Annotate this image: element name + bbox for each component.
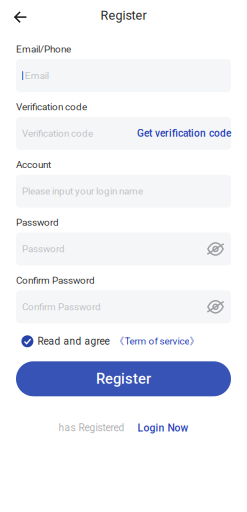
button[interactable]: Get verification code — [137, 127, 231, 139]
button[interactable]: Show password — [207, 242, 224, 255]
staticText: Password — [16, 217, 59, 228]
staticText: Confirm Password — [16, 274, 95, 286]
staticText: Verification code — [22, 128, 93, 139]
staticText: Register — [100, 8, 146, 23]
staticText: Please input your login name — [22, 185, 143, 197]
staticText: Password — [22, 243, 65, 255]
staticText: Email/Phone — [16, 43, 71, 55]
button[interactable]: Login Now — [137, 422, 188, 434]
button[interactable]: Read and agree — [16, 334, 231, 348]
staticText: Login Now — [137, 422, 188, 434]
staticText: Verification code — [16, 101, 87, 113]
button[interactable]: Back — [0, 0, 38, 31]
staticText: Confirm Password — [22, 301, 101, 313]
staticText: Account — [16, 159, 51, 170]
staticText: Read and agree — [37, 335, 109, 347]
staticText: has Registered — [58, 422, 124, 434]
staticText: Email — [25, 70, 49, 81]
staticText: 《Term of service》 — [114, 335, 199, 347]
staticText: Register — [96, 370, 151, 387]
button[interactable]: Show confirm password — [207, 300, 224, 313]
staticText: Get verification code — [137, 127, 231, 139]
button[interactable]: Register — [16, 361, 231, 396]
